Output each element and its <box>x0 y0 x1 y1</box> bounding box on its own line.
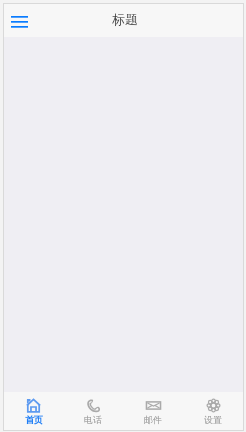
staticText: 标题 <box>112 11 138 27</box>
button[interactable]: Menu <box>7 9 31 33</box>
staticText: 首页 <box>25 414 43 425</box>
button[interactable]: 邮件 <box>123 392 183 430</box>
staticText: 邮件 <box>144 414 162 425</box>
button[interactable]: 电话 <box>63 392 123 430</box>
button[interactable]: 首页 <box>4 392 63 430</box>
button[interactable]: 设置 <box>183 392 243 430</box>
staticText: 电话 <box>84 414 102 425</box>
staticText: 设置 <box>204 414 222 425</box>
